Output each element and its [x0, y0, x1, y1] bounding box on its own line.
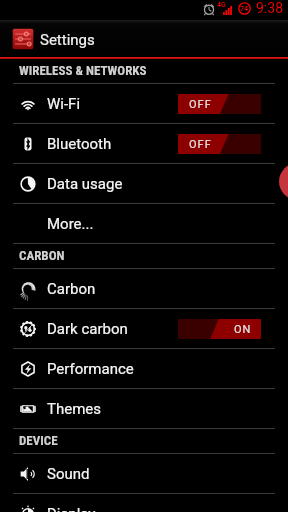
staticText: Performance	[47, 360, 134, 378]
button[interactable]: Sound	[0, 454, 288, 494]
staticText: OFF	[189, 138, 212, 151]
staticText: 74	[240, 5, 249, 13]
button[interactable]: Data usage	[0, 164, 288, 204]
button[interactable]: Carbon	[0, 269, 288, 309]
staticText: Settings	[40, 31, 95, 49]
button[interactable]: Settings	[0, 20, 288, 57]
staticText: Carbon	[47, 280, 96, 298]
button[interactable]: More...	[0, 204, 288, 244]
other: Scroll	[279, 163, 288, 200]
staticText: 4G	[217, 1, 226, 9]
staticText: Display	[47, 505, 96, 512]
staticText: Dark carbon	[47, 320, 128, 338]
button[interactable]: OFF	[178, 134, 261, 154]
staticText: Bluetooth	[47, 135, 112, 153]
button[interactable]: Themes	[0, 389, 288, 429]
button[interactable]: Dark carbon	[0, 309, 288, 349]
staticText: 9:38	[256, 0, 283, 16]
button[interactable]: Display	[0, 494, 288, 512]
button[interactable]: ON	[178, 319, 261, 339]
staticText: CARBON	[19, 248, 65, 263]
button[interactable]: OFF	[178, 94, 261, 114]
staticText: DEVICE	[19, 433, 58, 448]
staticText: Wi-Fi	[47, 95, 81, 113]
staticText: WIRELESS & NETWORKS	[19, 63, 147, 78]
staticText: Data usage	[47, 175, 123, 193]
staticText: ON	[234, 323, 252, 336]
button[interactable]: Wi-Fi	[0, 84, 288, 124]
staticText: More...	[47, 215, 94, 233]
staticText: Sound	[47, 465, 90, 483]
staticText: OFF	[189, 98, 212, 111]
button[interactable]: Performance	[0, 349, 288, 389]
staticText: Themes	[47, 400, 102, 418]
button[interactable]: Bluetooth	[0, 124, 288, 164]
